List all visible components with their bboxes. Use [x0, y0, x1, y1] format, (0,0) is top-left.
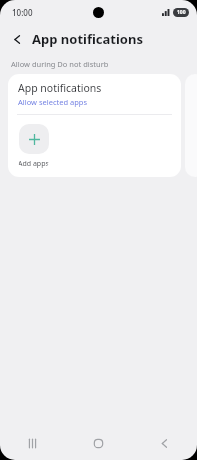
button[interactable]: Recent apps: [0, 426, 65, 460]
button[interactable]: Back: [131, 426, 197, 460]
staticText: Allow selected apps: [18, 97, 88, 107]
button[interactable]: Back: [6, 28, 28, 50]
staticText: Allow during Do not disturb: [11, 59, 109, 69]
button[interactable]: Add apps: [18, 124, 49, 169]
staticText: 100: [177, 9, 186, 16]
button[interactable]: Home: [65, 426, 131, 460]
button[interactable]: App notifications: [8, 74, 181, 177]
staticText: 10:00: [12, 7, 33, 18]
staticText: App notifications: [32, 30, 143, 48]
staticText: App notifications: [18, 81, 102, 95]
staticText: Add apps: [18, 159, 49, 169]
